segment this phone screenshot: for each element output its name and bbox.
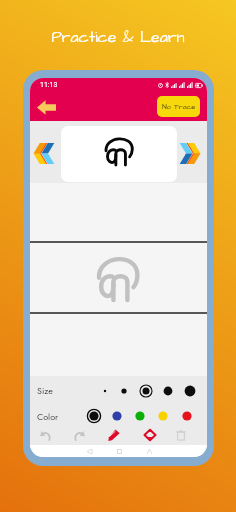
button[interactable]: Back <box>74 445 104 457</box>
button[interactable]: Green <box>131 407 149 425</box>
button[interactable]: Brush size 2 <box>115 382 133 400</box>
button[interactable]: Home <box>104 445 134 457</box>
button[interactable]: Black <box>85 407 103 425</box>
button[interactable]: Back <box>34 96 58 118</box>
staticText: No Trace <box>162 102 196 112</box>
button[interactable]: Next letter <box>180 140 204 166</box>
button[interactable]: Previous letter <box>30 140 53 166</box>
button[interactable]: Clear <box>171 425 191 445</box>
button[interactable]: Recents <box>134 445 164 457</box>
button[interactable]: Brush size 5 <box>181 382 199 400</box>
button[interactable]: Undo <box>35 425 55 445</box>
button[interactable]: Brush size 4 <box>159 382 177 400</box>
button[interactable]: No Trace <box>157 96 200 117</box>
button[interactable]: Redo <box>70 425 90 445</box>
button[interactable]: Eraser <box>140 425 160 445</box>
staticText: Color <box>37 410 59 423</box>
staticText: 11:13 <box>40 81 58 89</box>
button[interactable] <box>61 126 177 182</box>
button[interactable]: Brush size 1 <box>96 382 114 400</box>
button[interactable]: Red <box>178 407 196 425</box>
staticText: Size <box>37 384 53 397</box>
button[interactable]: Yellow <box>154 407 172 425</box>
button[interactable]: Blue <box>108 407 126 425</box>
staticText: Practice & Learn <box>51 26 185 48</box>
button[interactable]: Brush size 3 <box>137 382 155 400</box>
button[interactable]: Pencil <box>104 425 124 445</box>
